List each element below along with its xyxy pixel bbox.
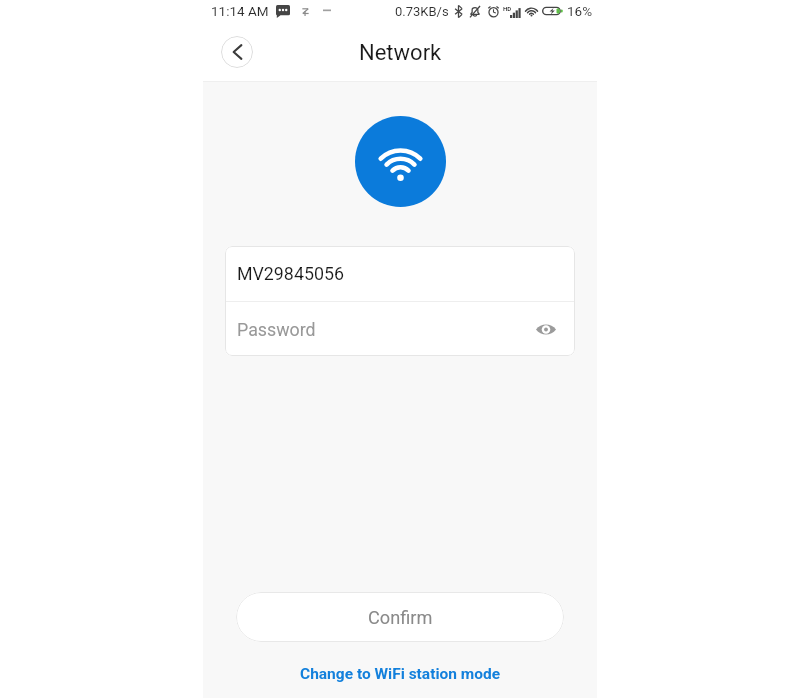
staticText: 16%	[567, 3, 593, 19]
button[interactable]: Show password	[533, 316, 559, 342]
staticText: 11:14 AM	[211, 3, 269, 19]
button[interactable]: Back	[221, 36, 253, 68]
button[interactable]: Password	[225, 302, 575, 356]
button[interactable]: MV29845056	[225, 246, 575, 301]
button[interactable]: Confirm	[236, 592, 564, 642]
staticText: Network	[359, 40, 442, 66]
staticText: MV29845056	[237, 263, 344, 284]
button[interactable]: Change to WiFi station mode	[203, 659, 597, 691]
staticText: Confirm	[368, 607, 433, 628]
staticText: Change to WiFi station mode	[300, 665, 501, 683]
staticText: Password	[237, 319, 316, 340]
staticText: 0.73KB/s	[395, 4, 449, 19]
staticText: HD	[503, 5, 512, 12]
